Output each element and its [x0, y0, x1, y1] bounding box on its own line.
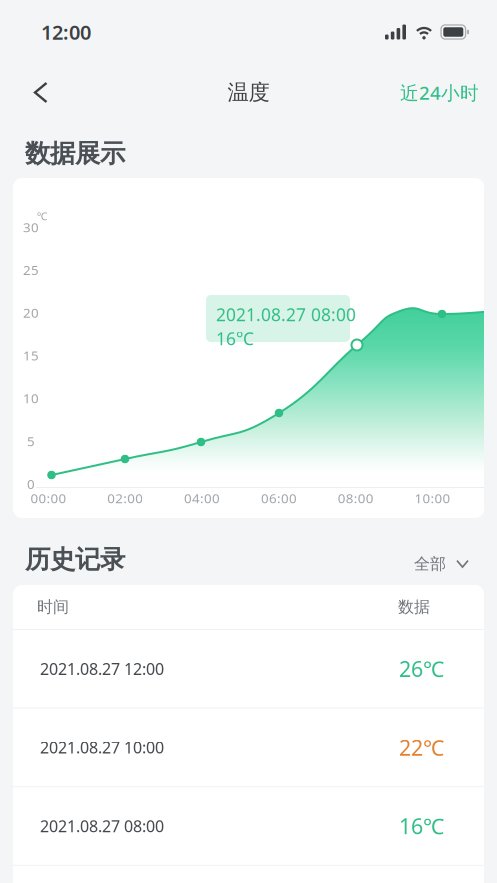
staticText: 5	[27, 432, 35, 450]
staticText: 02:00	[107, 489, 143, 507]
staticText: 15	[23, 346, 39, 364]
staticText: 08:00	[338, 489, 374, 507]
staticText: 06:00	[261, 489, 297, 507]
staticText: 历史记录	[25, 544, 125, 575]
staticText: 全部	[414, 554, 446, 574]
staticText: 26℃	[399, 655, 444, 683]
staticText: ℃	[37, 209, 48, 223]
staticText: 2021.08.27 08:00	[40, 815, 164, 837]
staticText: 00:00	[30, 489, 66, 507]
staticText: 30	[23, 218, 39, 236]
button[interactable]: 2021.08.27 12:00	[13, 630, 484, 708]
button[interactable]: 近24小时	[384, 68, 495, 117]
staticText: 0	[27, 475, 35, 493]
staticText: 25	[23, 261, 39, 279]
staticText: 20	[23, 304, 39, 321]
staticText: 2021.08.27 12:00	[40, 658, 164, 679]
staticText: 16℃	[399, 812, 444, 840]
button[interactable]: Back	[18, 71, 63, 114]
staticText: 温度	[227, 79, 269, 106]
button[interactable]: 2021.08.27 10:00	[13, 709, 484, 786]
staticText: 22℃	[399, 733, 444, 761]
staticText: 数据展示	[25, 138, 125, 169]
staticText: 2021.08.27 10:00	[40, 737, 164, 758]
staticText: 近24小时	[400, 80, 479, 105]
staticText: 时间	[37, 597, 69, 617]
button[interactable]: 全部	[406, 546, 476, 582]
staticText: 12:00	[41, 19, 91, 45]
staticText: 数据	[398, 597, 430, 617]
staticText: 2021.08.27 08:00	[216, 303, 356, 326]
staticText: 10	[23, 389, 39, 407]
staticText: 16°C	[216, 327, 254, 350]
button[interactable]: 2021.08.27 08:00	[13, 787, 484, 865]
staticText: 10:00	[414, 489, 450, 507]
staticText: 04:00	[184, 489, 220, 507]
